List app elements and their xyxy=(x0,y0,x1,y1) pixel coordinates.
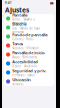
staticText: Batería xyxy=(12,21,26,27)
staticText: Apps · Biblioteca xyxy=(12,55,36,59)
staticText: Servicios xyxy=(12,82,23,86)
staticText: Sonidos · Vibración xyxy=(12,46,39,50)
staticText: Brillo · Tamaño y navegación xyxy=(12,18,34,25)
staticText: Pantalla xyxy=(12,12,27,18)
button[interactable]: Pantalla de inicio xyxy=(4,50,54,59)
staticText: Ajustes xyxy=(5,6,29,14)
staticText: Visión · Audición xyxy=(12,64,37,68)
staticText: Colores · Fotos xyxy=(12,37,33,41)
staticText: Tonos xyxy=(12,41,23,46)
button[interactable]: Seguridad y priv. xyxy=(4,68,54,77)
button[interactable]: Batería xyxy=(4,23,54,32)
staticText: Pantalla de inicio xyxy=(12,50,44,55)
staticText: 9:41 xyxy=(5,1,12,5)
button[interactable]: Ubicación xyxy=(4,77,54,86)
button[interactable]: Tonos xyxy=(4,41,54,50)
button[interactable]: Accesibilidad xyxy=(4,59,54,68)
staticText: Fondo de pantalla xyxy=(12,32,47,37)
staticText: Seguridad y priv. xyxy=(12,68,46,73)
button[interactable]: Fondo de pantalla xyxy=(4,32,54,41)
staticText: Permisos · Datos xyxy=(12,73,34,77)
staticText: Ubicación xyxy=(12,77,31,82)
staticText: Accesibilidad xyxy=(12,59,38,64)
button[interactable]: Pantalla xyxy=(4,14,54,23)
staticText: ▮▮▮ xyxy=(50,1,53,4)
staticText: Uso · Modo de bajo consumo xyxy=(12,27,40,34)
